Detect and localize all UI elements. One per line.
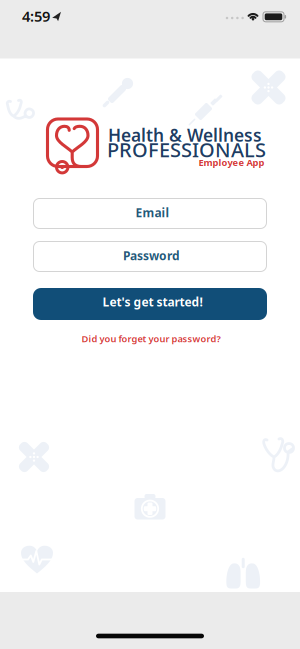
button[interactable]: Let's get started!	[33, 288, 267, 320]
staticText: Let's get started!	[102, 294, 202, 310]
staticText: PROFESSIONALS	[107, 136, 266, 163]
staticText: Email	[135, 204, 169, 220]
staticText: 4:59	[22, 6, 50, 26]
button[interactable]: Did you forget your password?	[81, 332, 220, 345]
staticText: Health & Wellness	[108, 123, 262, 146]
staticText: Password	[123, 247, 180, 263]
button[interactable]: Password	[33, 241, 267, 272]
button[interactable]: Email	[33, 198, 267, 229]
staticText: Did you forget your password?	[81, 332, 220, 345]
staticText: Employee App	[198, 156, 264, 169]
